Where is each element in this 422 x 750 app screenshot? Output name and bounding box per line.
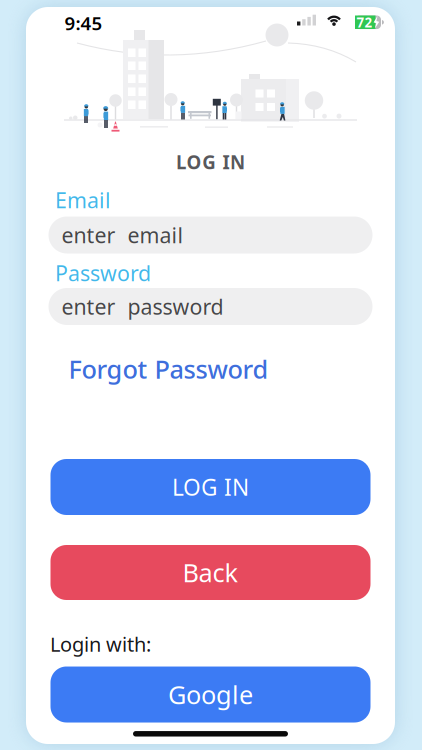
staticText: Google: [168, 678, 253, 711]
button[interactable]: Forgot Password: [68, 352, 268, 386]
button[interactable]: enter email: [48, 216, 372, 253]
button[interactable]: LOG IN: [50, 459, 370, 515]
staticText: Forgot Password: [68, 352, 268, 386]
staticText: Login with:: [50, 631, 151, 657]
button[interactable]: Back: [50, 545, 370, 600]
staticText: LOG IN: [172, 472, 249, 502]
staticText: Password: [55, 259, 151, 287]
button[interactable]: Google: [50, 666, 370, 722]
staticText: 9:45: [64, 11, 102, 35]
staticText: Back: [182, 556, 238, 589]
staticText: enter password: [61, 292, 223, 321]
staticText: enter email: [61, 221, 183, 249]
staticText: LOG IN: [176, 150, 245, 174]
button[interactable]: enter password: [48, 288, 372, 325]
staticText: Email: [55, 186, 111, 214]
staticText: 72: [356, 13, 372, 31]
